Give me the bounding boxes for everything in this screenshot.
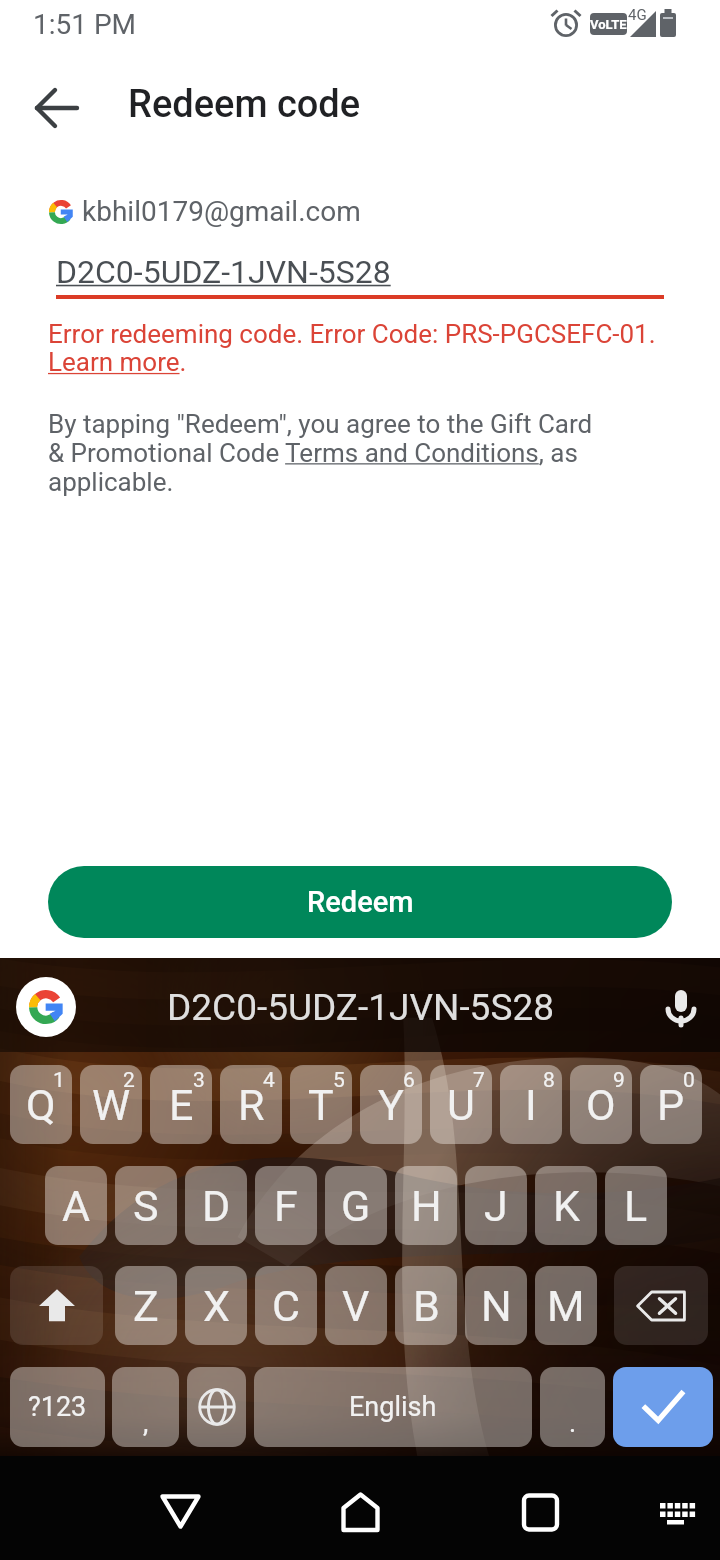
staticText: X [203, 1281, 230, 1331]
staticText: B [413, 1281, 440, 1331]
staticText: F [274, 1181, 298, 1231]
staticText: L [624, 1181, 648, 1231]
staticText: G [341, 1181, 371, 1231]
staticText: S [133, 1181, 159, 1231]
staticText: 2 [123, 1068, 135, 1093]
staticText: , [143, 1407, 149, 1439]
staticText: E [169, 1080, 194, 1130]
button[interactable]: S [115, 1166, 177, 1245]
staticText: D2C0-5UDZ-1JVN-5S28 [167, 986, 554, 1029]
button[interactable]: Google search [16, 977, 76, 1037]
staticText: 0 [683, 1068, 695, 1093]
staticText: English [349, 1391, 437, 1423]
staticText: T [308, 1080, 334, 1130]
button[interactable]: I [500, 1065, 562, 1144]
staticText: VoLTE [590, 17, 627, 32]
staticText: Q [26, 1080, 56, 1130]
button[interactable]: R [220, 1065, 282, 1144]
staticText: M [547, 1281, 585, 1331]
button[interactable]: F [255, 1166, 317, 1245]
button[interactable]: Redeem [48, 866, 672, 938]
button[interactable]: backspace [614, 1266, 708, 1345]
staticText: 1 [53, 1068, 65, 1093]
button[interactable]: H [395, 1166, 457, 1245]
button[interactable]: J [465, 1166, 527, 1245]
button[interactable]: G [325, 1166, 387, 1245]
staticText: Redeem code [128, 82, 361, 127]
staticText: 1:51 PM [33, 8, 137, 41]
staticText: Redeem [307, 885, 414, 919]
staticText: 9 [613, 1068, 625, 1093]
staticText: W [92, 1080, 131, 1130]
staticText: 7 [473, 1068, 485, 1093]
staticText: V [342, 1281, 370, 1331]
button[interactable]: enter [613, 1367, 713, 1447]
staticText: 8 [543, 1068, 555, 1093]
button[interactable]: O [570, 1065, 632, 1144]
staticText: U [447, 1080, 475, 1130]
button[interactable]: C [255, 1266, 317, 1345]
staticText: 6 [403, 1068, 415, 1093]
staticText: Y [378, 1080, 404, 1130]
button[interactable]: W [80, 1065, 142, 1144]
button[interactable]: M [535, 1266, 597, 1345]
button[interactable]: D [185, 1166, 247, 1245]
button[interactable]: Voice input [657, 980, 705, 1028]
button[interactable]: Q [10, 1065, 72, 1144]
staticText: 4G [628, 6, 647, 24]
staticText: R [238, 1080, 265, 1130]
button[interactable]: language [187, 1367, 246, 1447]
staticText: D2C0-5UDZ-1JVN-5S28 [56, 253, 391, 291]
button[interactable]: A [45, 1166, 107, 1245]
button[interactable]: B [395, 1266, 457, 1345]
staticText: N [481, 1281, 512, 1331]
staticText: D [202, 1181, 231, 1231]
button[interactable]: Back [144, 1456, 216, 1560]
staticText: O [586, 1080, 616, 1130]
button[interactable]: U [430, 1065, 492, 1144]
staticText: K [553, 1181, 580, 1231]
staticText: H [411, 1181, 442, 1231]
button[interactable]: E [150, 1065, 212, 1144]
button[interactable]: P [640, 1065, 702, 1144]
button[interactable]: X [185, 1266, 247, 1345]
button[interactable]: Z [115, 1266, 177, 1345]
staticText: J [484, 1181, 508, 1231]
staticText: A [62, 1181, 91, 1231]
staticText: Error redeeming code. Error Code: PRS-PG… [48, 319, 680, 378]
button[interactable]: , [112, 1367, 179, 1447]
button[interactable]: N [465, 1266, 527, 1345]
staticText: By tapping "Redeem", you agree to the Gi… [48, 409, 604, 497]
staticText: 3 [193, 1068, 205, 1093]
button[interactable]: T [290, 1065, 352, 1144]
staticText: Z [133, 1281, 159, 1331]
button[interactable]: ?123 [10, 1367, 105, 1447]
button[interactable]: . [540, 1367, 605, 1447]
button[interactable]: English [254, 1367, 532, 1447]
staticText: C [272, 1281, 300, 1331]
staticText: P [657, 1080, 685, 1130]
button[interactable]: shift [10, 1266, 103, 1345]
button[interactable]: Recent apps [504, 1456, 576, 1560]
button[interactable]: L [605, 1166, 667, 1245]
button[interactable]: Home [324, 1456, 396, 1560]
button[interactable]: K [535, 1166, 597, 1245]
staticText: kbhil0179@gmail.com [82, 195, 361, 228]
staticText: . [569, 1407, 577, 1439]
staticText: ?123 [28, 1391, 87, 1423]
staticText: I [525, 1080, 537, 1130]
staticText: 5 [333, 1068, 345, 1093]
button[interactable]: V [325, 1266, 387, 1345]
staticText: 4 [263, 1068, 275, 1093]
button[interactable]: Y [360, 1065, 422, 1144]
button[interactable]: Hide keyboard [645, 1492, 705, 1552]
button[interactable]: Navigate up [24, 74, 92, 142]
